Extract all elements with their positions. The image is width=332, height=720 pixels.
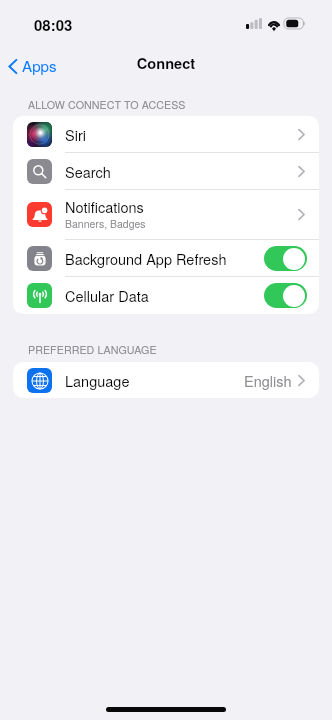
staticText: Siri: [65, 124, 86, 145]
staticText: Search: [65, 161, 111, 182]
staticText: Background App Refresh: [65, 248, 227, 269]
staticText: Banners, Badges: [65, 216, 146, 231]
staticText: PREFERRED LANGUAGE: [28, 342, 157, 357]
button[interactable]: Toggle: [264, 246, 307, 271]
staticText: Language: [65, 370, 130, 391]
staticText: 08:03: [34, 14, 73, 35]
staticText: ALLOW CONNECT TO ACCESS: [28, 97, 186, 112]
button[interactable]: Siri: [13, 116, 319, 152]
button[interactable]: Search: [13, 153, 319, 189]
staticText: Notifications: [65, 196, 144, 217]
button[interactable]: Background App Refresh: [13, 240, 319, 276]
button[interactable]: Apps: [4, 51, 63, 81]
staticText: Cellular Data: [65, 285, 149, 306]
staticText: Apps: [22, 55, 57, 77]
staticText: English: [244, 370, 292, 391]
staticText: Connect: [0, 53, 332, 74]
button[interactable]: Toggle: [264, 283, 307, 308]
button[interactable]: Notifications: [13, 190, 319, 239]
button[interactable]: Language: [13, 362, 319, 398]
button[interactable]: Cellular Data: [13, 277, 319, 313]
